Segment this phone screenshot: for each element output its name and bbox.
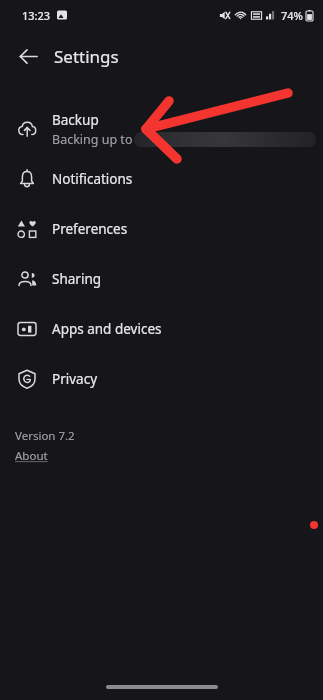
staticText: Backing up to (52, 131, 136, 148)
staticText: 74% (281, 8, 303, 23)
staticText: About (15, 448, 48, 464)
staticText: Preferences (52, 220, 128, 238)
staticText: Version 7.2 (15, 428, 75, 444)
button[interactable]: Privacy (0, 354, 323, 404)
button[interactable]: Backup (0, 104, 323, 154)
staticText: Apps and devices (52, 320, 162, 338)
staticText: 13:23 (22, 8, 51, 23)
staticText: Backup (52, 111, 99, 129)
staticText: Settings (54, 45, 119, 68)
button[interactable]: Sharing (0, 254, 323, 304)
button[interactable]: Back (8, 36, 48, 76)
button[interactable]: Preferences (0, 204, 323, 254)
button[interactable]: Apps and devices (0, 304, 323, 354)
staticText: Notifications (52, 170, 133, 188)
staticText: Privacy (52, 370, 98, 388)
button[interactable]: About (15, 448, 48, 464)
button[interactable]: Notifications (0, 154, 323, 204)
staticText: Sharing (52, 270, 102, 288)
